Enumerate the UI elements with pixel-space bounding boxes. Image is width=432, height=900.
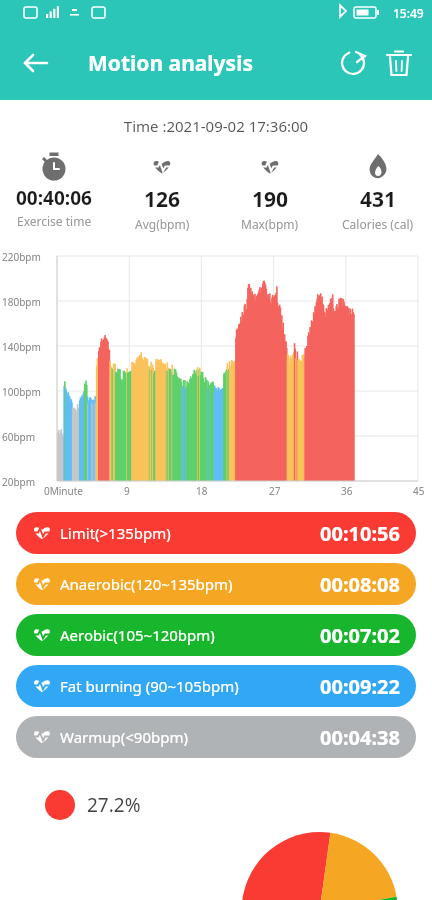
staticText: 00:10:56 [320,520,400,547]
staticText: 431 [360,185,397,214]
staticText: 100bpm [2,385,41,399]
staticText: 36 [341,484,353,498]
staticText: 9 [124,484,130,498]
button[interactable]: Limit(>135bpm) [16,512,416,554]
staticText: Aerobic(105~120bpm) [60,625,215,645]
staticText: 60bpm [2,430,36,444]
button[interactable]: Aerobic(105~120bpm) [16,614,416,656]
button[interactable]: Refresh [330,40,376,86]
staticText: 20bpm [2,475,36,489]
button[interactable]: Delete [376,40,422,86]
staticText: Exercise time [17,213,92,229]
staticText: 220bpm [2,250,41,264]
button[interactable]: Fat burning (90~105bpm) [16,665,416,707]
staticText: Calories (cal) [342,216,414,232]
staticText: 00:40:06 [16,185,92,211]
staticText: 126 [144,185,181,214]
staticText: 0Minute [44,484,83,498]
button[interactable]: Warmup(<90bpm) [16,716,416,758]
button[interactable]: Anaerobic(120~135bpm) [16,563,416,605]
staticText: Time :2021-09-02 17:36:00 [0,116,432,136]
staticText: 00:08:08 [320,571,400,598]
staticText: 00:07:02 [320,622,400,649]
staticText: Fat burning (90~105bpm) [60,676,239,696]
staticText: Limit(>135bpm) [60,523,171,543]
staticText: 00:04:38 [320,724,400,751]
staticText: Max(bpm) [241,216,299,232]
staticText: Warmup(<90bpm) [60,727,188,747]
staticText: 00:09:22 [320,673,400,700]
staticText: Motion analysis [88,49,253,78]
staticText: 190 [252,185,289,214]
button[interactable]: Back [14,41,58,85]
staticText: Anaerobic(120~135bpm) [60,574,233,594]
staticText: 45 [413,484,425,498]
staticText: 15:49 [393,5,424,21]
staticText: 140bpm [2,340,41,354]
staticText: 180bpm [2,295,41,309]
staticText: Avg(bpm) [135,216,190,232]
staticText: 27 [269,484,281,498]
staticText: 27.2% [87,792,141,818]
staticText: 18 [196,484,208,498]
